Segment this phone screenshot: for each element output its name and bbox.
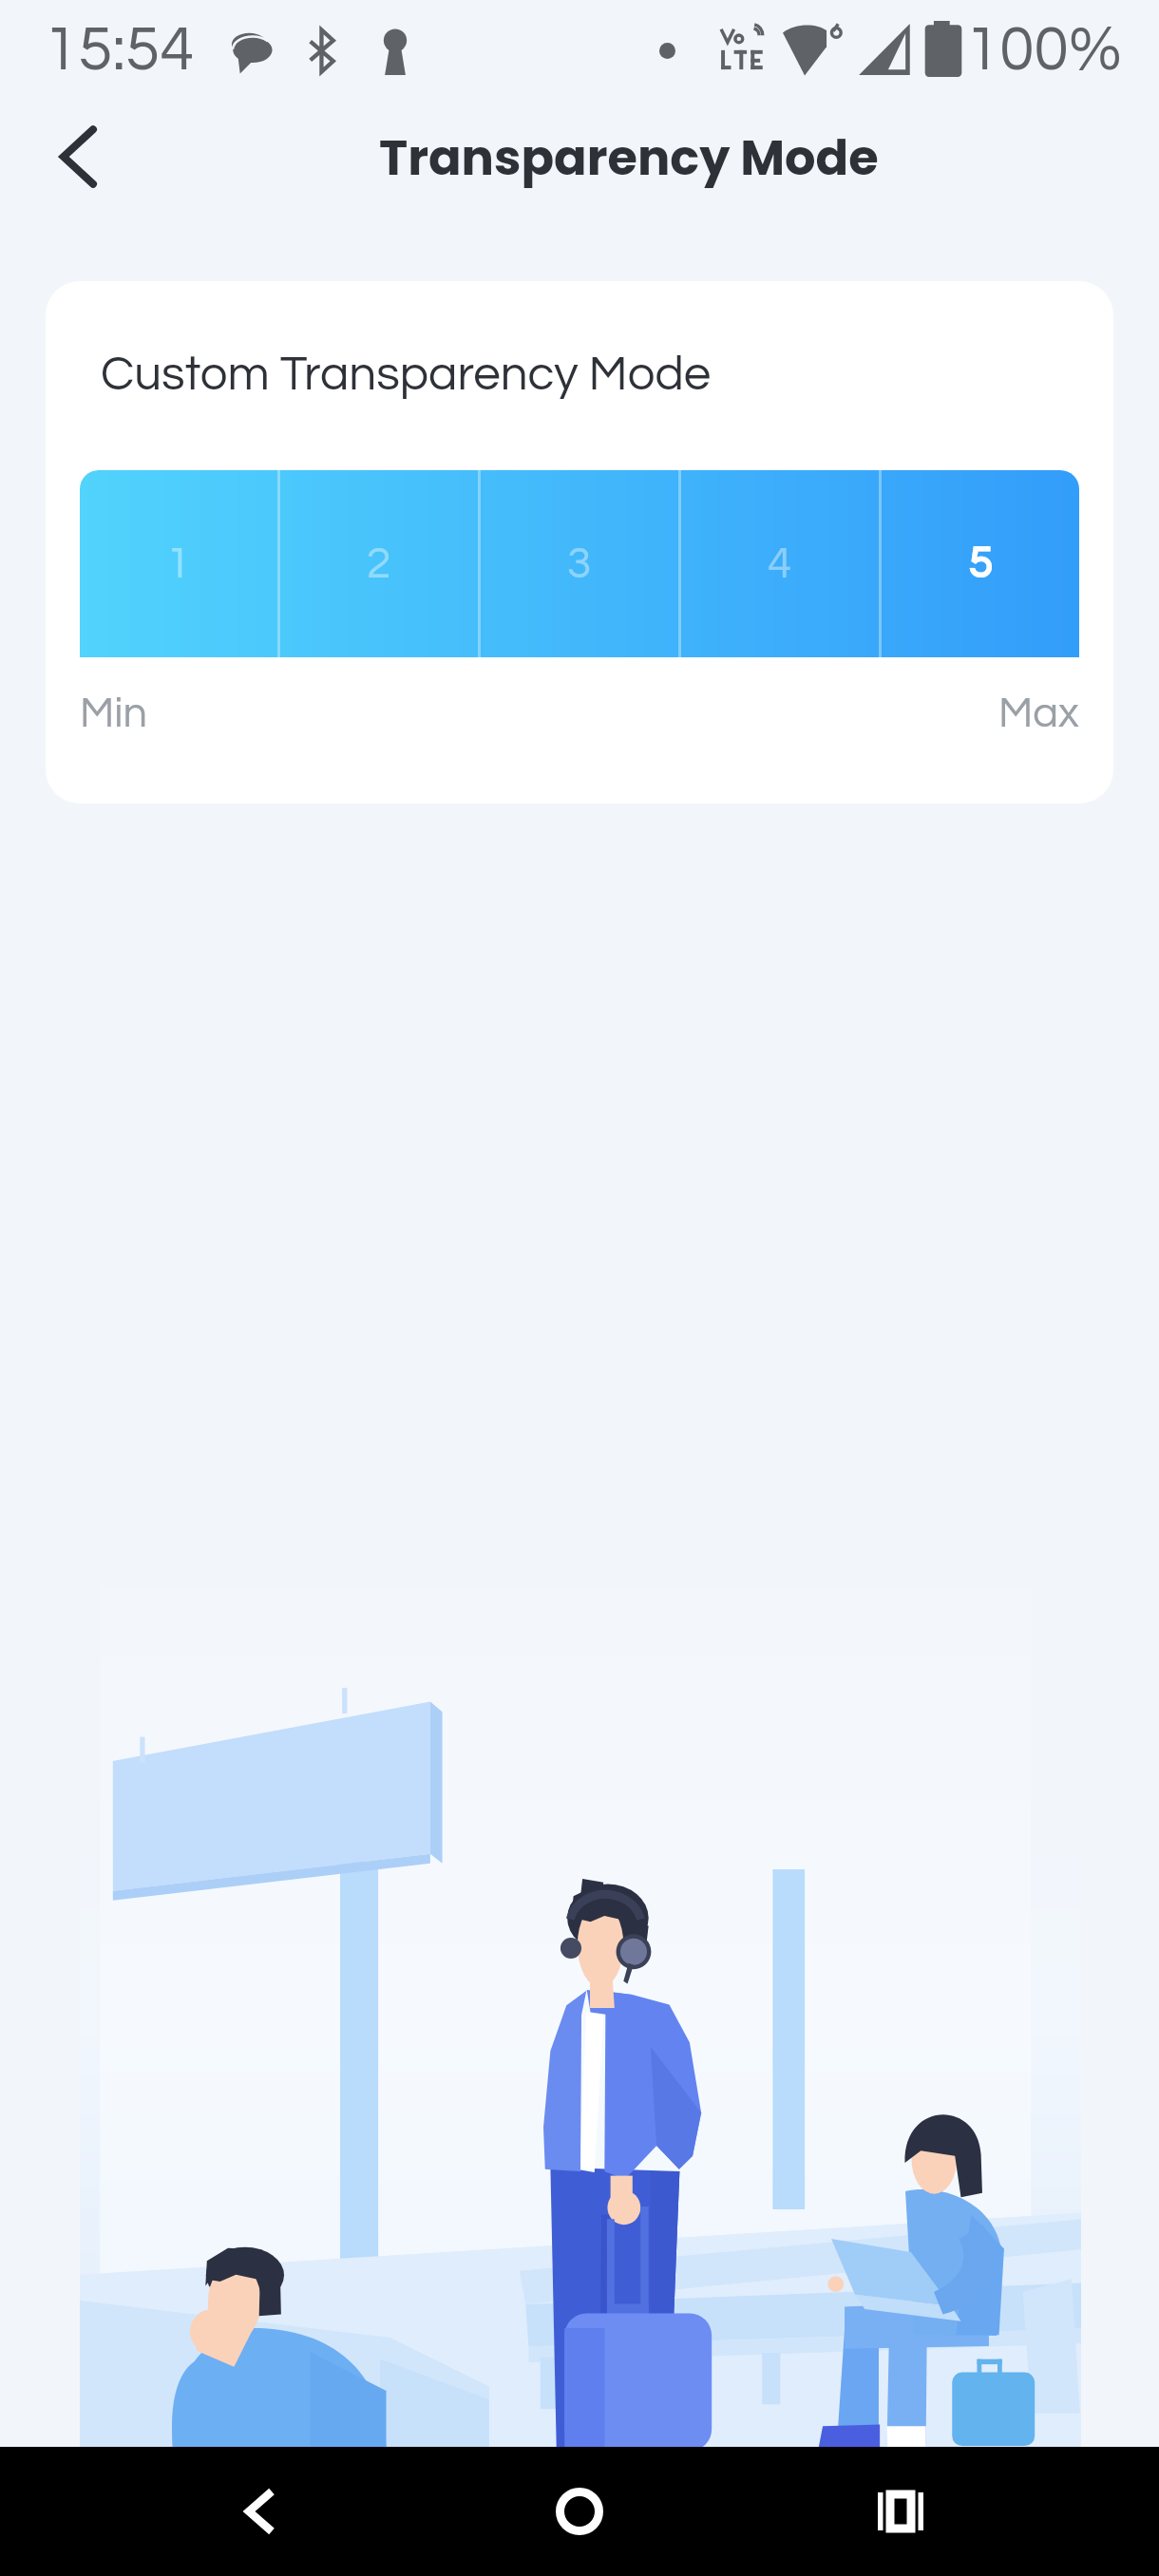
button[interactable]: Home: [536, 2468, 623, 2555]
button[interactable]: 2: [280, 470, 478, 657]
staticText: 100%: [965, 18, 1122, 83]
button[interactable]: 4: [681, 470, 879, 657]
staticText: Custom Transparency Mode: [101, 350, 712, 400]
button[interactable]: 1: [80, 470, 277, 657]
staticText: 1: [166, 541, 191, 586]
staticText: 2: [367, 541, 391, 586]
staticText: 3: [567, 541, 592, 586]
button[interactable]: Back: [34, 113, 122, 200]
button[interactable]: Back: [217, 2468, 304, 2555]
staticText: Max: [998, 691, 1079, 735]
button[interactable]: 5: [882, 470, 1079, 657]
button[interactable]: Recent apps: [857, 2468, 944, 2555]
staticText: Transparency Mode: [379, 123, 879, 191]
staticText: 4: [768, 541, 792, 586]
staticText: 5: [968, 541, 993, 586]
staticText: 15:54: [44, 18, 195, 83]
staticText: Min: [80, 691, 147, 735]
button[interactable]: 3: [481, 470, 678, 657]
